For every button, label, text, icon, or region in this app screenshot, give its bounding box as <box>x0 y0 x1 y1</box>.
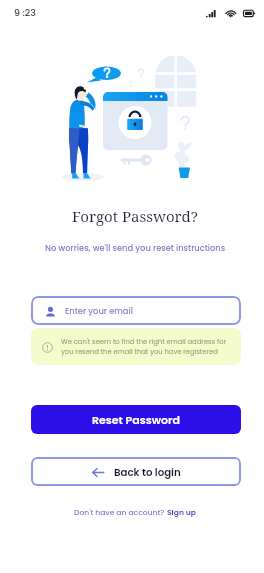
staticText: No worries, we'll send you reset instruc… <box>3 242 264 254</box>
staticText: Back to login <box>114 465 181 479</box>
button[interactable]: Reset Password <box>31 405 241 434</box>
button[interactable]: Enter your email <box>31 296 241 325</box>
button[interactable]: Sign up <box>167 507 196 518</box>
staticText: Don't have an account? <box>74 507 167 518</box>
staticText: 9 :23 <box>14 6 36 19</box>
staticText: Reset Password <box>92 412 180 427</box>
staticText: Forgot Password? <box>3 206 264 226</box>
staticText: Enter your email <box>65 305 133 317</box>
staticText: Sign up <box>167 507 196 518</box>
staticText: We can't seem to find the right email ad… <box>61 337 231 357</box>
button[interactable]: Back to login <box>31 457 241 486</box>
